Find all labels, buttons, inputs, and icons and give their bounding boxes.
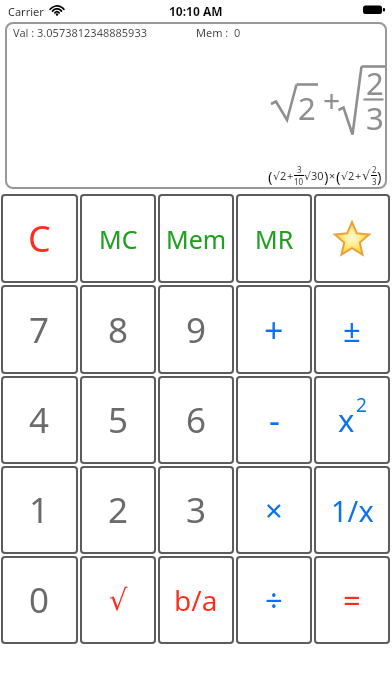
staticText: 3 xyxy=(366,97,384,139)
staticText: MR xyxy=(255,222,294,256)
staticText: 1/x xyxy=(331,491,374,530)
staticText: 4 xyxy=(29,396,50,444)
staticText: × xyxy=(329,168,336,183)
staticText: Carrier xyxy=(8,4,44,19)
staticText: 7 xyxy=(29,306,50,354)
button[interactable]: Mem xyxy=(158,194,234,283)
staticText: ) xyxy=(377,166,382,186)
staticText: 9 xyxy=(186,306,207,354)
staticText: ( xyxy=(336,166,341,186)
button[interactable]: 9 xyxy=(158,285,234,374)
staticText: Val : 3.0573812348885933 xyxy=(13,25,147,40)
staticText: ± xyxy=(343,309,361,351)
staticText: ) xyxy=(324,166,329,186)
staticText: 8 xyxy=(108,306,129,354)
button[interactable]: 0 xyxy=(1,556,78,644)
button[interactable] xyxy=(314,194,390,283)
button[interactable]: 2 xyxy=(80,466,156,554)
staticText: 5 xyxy=(108,396,129,444)
staticText: + xyxy=(264,307,284,353)
button[interactable]: 6 xyxy=(158,376,234,464)
staticText: 2 xyxy=(108,486,129,534)
staticText: √2 xyxy=(341,168,355,183)
button[interactable]: × xyxy=(236,466,312,554)
staticText: √2 xyxy=(273,168,287,183)
staticText: √ xyxy=(362,168,371,183)
staticText: 10 xyxy=(294,176,304,187)
button[interactable]: ± xyxy=(314,285,390,374)
staticText: Mem : 0 xyxy=(196,25,241,40)
button[interactable]: 4 xyxy=(1,376,78,464)
staticText: 3 xyxy=(186,486,207,534)
button[interactable]: - xyxy=(236,376,312,464)
button[interactable]: x xyxy=(314,376,390,464)
staticText: ( xyxy=(268,166,273,186)
staticText: 1 xyxy=(29,486,50,534)
staticText: 2 xyxy=(366,62,384,104)
button[interactable]: C xyxy=(1,194,78,283)
staticText: x xyxy=(338,399,355,441)
staticText: MC xyxy=(99,222,138,256)
button[interactable]: MR xyxy=(236,194,312,283)
staticText: 2 xyxy=(356,392,367,418)
staticText: 2 xyxy=(298,87,316,129)
staticText: - xyxy=(269,397,280,443)
button[interactable]: 1 xyxy=(1,466,78,554)
staticText: Mem xyxy=(166,222,227,256)
button[interactable]: b/a xyxy=(158,556,234,644)
button[interactable]: √ xyxy=(80,556,156,644)
button[interactable]: 8 xyxy=(80,285,156,374)
staticText: b/a xyxy=(174,581,218,619)
staticText: √ xyxy=(109,583,128,617)
staticText: √30 xyxy=(304,168,324,183)
staticText: + xyxy=(355,168,362,183)
button[interactable]: ÷ xyxy=(236,556,312,644)
staticText: 6 xyxy=(186,396,207,444)
staticText: ÷ xyxy=(265,579,283,621)
button[interactable]: 3 xyxy=(158,466,234,554)
staticText: 10:10 AM xyxy=(169,3,223,19)
staticText: 3 xyxy=(372,176,377,187)
staticText: = xyxy=(343,579,361,621)
staticText: C xyxy=(28,214,51,263)
button[interactable]: = xyxy=(314,556,390,644)
staticText: × xyxy=(265,489,283,531)
button[interactable]: 1/x xyxy=(314,466,390,554)
staticText: + xyxy=(287,168,294,183)
staticText: 0 xyxy=(29,576,50,624)
button[interactable]: + xyxy=(236,285,312,374)
button[interactable]: MC xyxy=(80,194,156,283)
staticText: 2 xyxy=(372,164,377,175)
button[interactable]: 5 xyxy=(80,376,156,464)
staticText: + xyxy=(323,80,341,121)
button[interactable]: 7 xyxy=(1,285,78,374)
staticText: 3 xyxy=(297,164,302,175)
